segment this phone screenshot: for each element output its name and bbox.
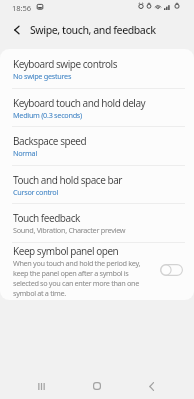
- staticText: Swipe, touch, and feedback: [30, 23, 156, 37]
- button[interactable]: Back: [135, 368, 167, 399]
- staticText: 18:56: [12, 3, 32, 13]
- staticText: Keep symbol panel open: [13, 244, 119, 258]
- staticText: Normal: [13, 148, 37, 158]
- staticText: Touch feedback: [13, 211, 80, 225]
- button[interactable]: Keyboard swipe controls: [0, 49, 194, 88]
- staticText: Cursor control: [13, 187, 58, 197]
- staticText: When you touch and hold the period key, …: [13, 258, 148, 298]
- staticText: Touch and hold space bar: [13, 173, 122, 187]
- staticText: Medium (0.3 seconds): [13, 110, 82, 120]
- staticText: Keyboard touch and hold delay: [13, 96, 146, 110]
- button[interactable]: Keep symbol panel open: [0, 242, 194, 300]
- button[interactable]: Navigate up: [0, 16, 30, 44]
- staticText: Keyboard swipe controls: [13, 57, 118, 71]
- button[interactable]: Touch feedback: [0, 203, 194, 242]
- staticText: No swipe gestures: [13, 71, 72, 81]
- button[interactable]: Recent apps: [25, 368, 57, 399]
- button[interactable]: Backspace speed: [0, 126, 194, 165]
- staticText: Backspace speed: [13, 134, 87, 148]
- button[interactable]: Home: [81, 368, 113, 399]
- button[interactable]: Keep symbol panel open: [160, 264, 183, 276]
- button[interactable]: Touch and hold space bar: [0, 165, 194, 204]
- button[interactable]: Keyboard touch and hold delay: [0, 88, 194, 127]
- staticText: Sound, Vibration, Character preview: [13, 225, 126, 235]
